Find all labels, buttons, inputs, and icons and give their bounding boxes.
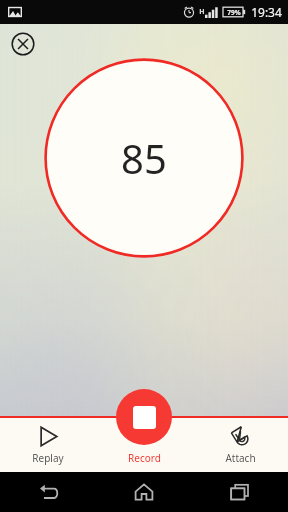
button[interactable]: Record [96,418,192,472]
staticText: 79% [227,8,241,17]
button[interactable]: Back [0,472,96,512]
button[interactable]: Record [116,389,172,445]
staticText: 85 [121,131,167,185]
staticText: 19:34 [251,4,282,20]
button[interactable]: Replay [0,418,96,472]
button[interactable]: Attach [192,418,288,472]
button[interactable]: 85 [44,58,244,258]
button[interactable]: Home [96,472,192,512]
staticText: H [199,7,205,17]
button[interactable]: Close [10,31,36,57]
staticText: Replay [32,451,64,465]
staticText: Attach [225,451,256,465]
staticText: Record [128,451,161,465]
button[interactable]: Recents [192,472,288,512]
